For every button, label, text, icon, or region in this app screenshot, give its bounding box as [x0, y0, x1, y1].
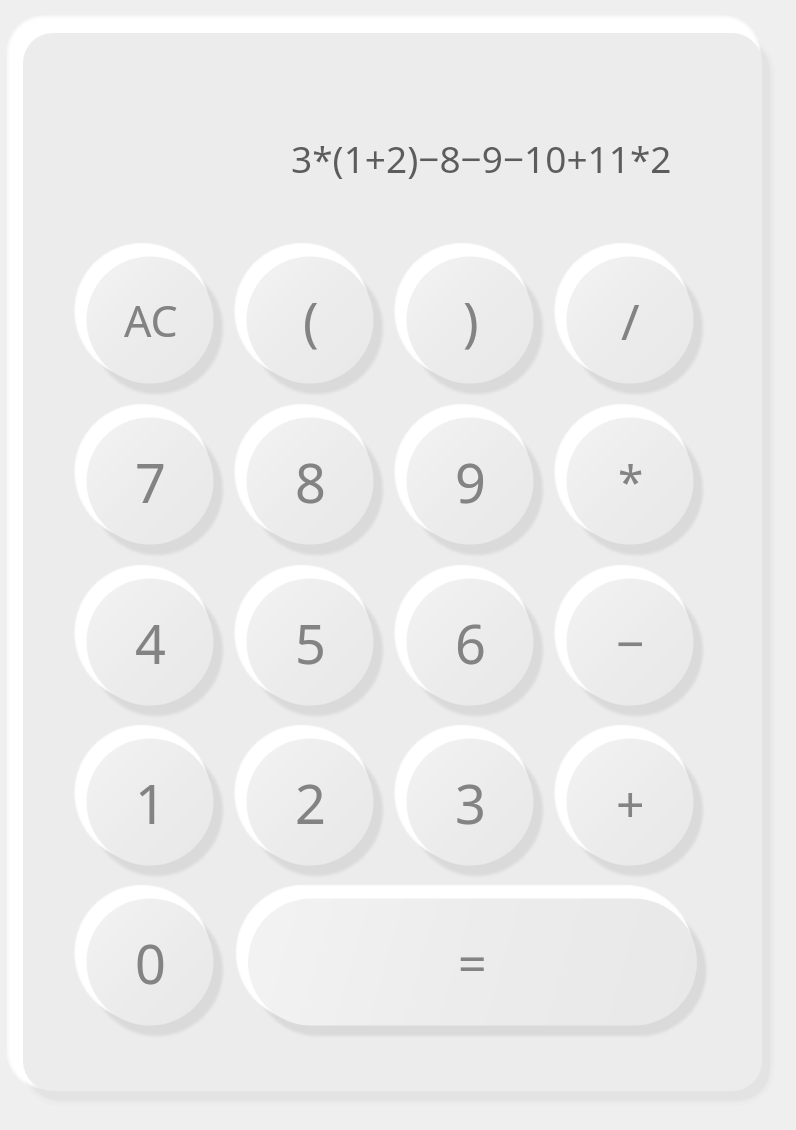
button[interactable]: −	[567, 579, 694, 706]
staticText: 6	[455, 606, 486, 680]
button[interactable]: 0	[87, 899, 214, 1026]
staticText: 4	[135, 606, 166, 680]
staticText: 3*(1+2)−8−9−10+11*2	[291, 133, 672, 183]
staticText: AC	[124, 291, 178, 350]
button[interactable]: 6	[407, 579, 534, 706]
staticText: 9	[455, 445, 486, 519]
button[interactable]: 8	[247, 418, 374, 545]
staticText: (	[303, 285, 319, 356]
staticText: 0	[135, 926, 166, 1000]
staticText: 8	[295, 445, 326, 519]
button[interactable]: Equals	[248, 899, 697, 1026]
staticText: /	[621, 287, 640, 355]
staticText: 2	[295, 766, 326, 840]
button[interactable]: 5	[247, 579, 374, 706]
staticText: 7	[135, 445, 166, 519]
button[interactable]: *	[567, 418, 694, 545]
button[interactable]: 7	[87, 418, 214, 545]
button[interactable]: /	[567, 257, 694, 384]
button[interactable]: )	[407, 257, 534, 384]
button[interactable]: AC	[87, 257, 214, 384]
button[interactable]: +	[567, 739, 694, 866]
button[interactable]: 3	[407, 739, 534, 866]
staticText: 1	[135, 766, 166, 840]
button[interactable]: (	[247, 257, 374, 384]
staticText: =	[458, 929, 487, 997]
staticText: 5	[295, 606, 326, 680]
button[interactable]: 1	[87, 739, 214, 866]
button[interactable]: 4	[87, 579, 214, 706]
staticText: −	[616, 609, 645, 677]
staticText: *	[618, 450, 644, 513]
staticText: +	[616, 769, 645, 837]
staticText: )	[463, 285, 479, 356]
button[interactable]: 9	[407, 418, 534, 545]
staticText: 3	[455, 766, 486, 840]
button[interactable]: 2	[247, 739, 374, 866]
